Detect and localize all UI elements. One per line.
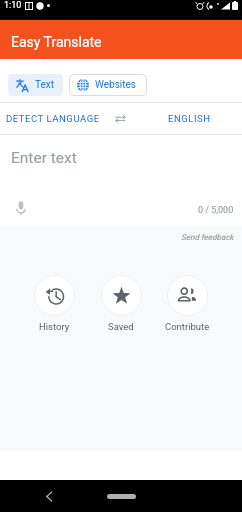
button[interactable]: ENGLISH (136, 103, 242, 134)
button[interactable]: Saved (88, 275, 154, 332)
staticText: Saved (108, 321, 134, 332)
staticText: Contribute (165, 321, 210, 332)
staticText: Websites (95, 79, 136, 91)
staticText: Text (35, 79, 55, 91)
button[interactable]: History (21, 275, 87, 332)
button[interactable]: Swap languages (105, 103, 136, 134)
button[interactable]: Contribute (154, 275, 220, 332)
staticText: DETECT LANGUAGE (6, 113, 100, 124)
staticText: 1:10 (4, 0, 22, 11)
staticText: Easy Translate (11, 34, 102, 50)
button[interactable]: Back (42, 489, 56, 503)
button[interactable]: Home (107, 494, 136, 499)
staticText: 0 / 5,000 (198, 205, 234, 216)
staticText: " (217, 2, 220, 10)
staticText: ENGLISH (168, 113, 211, 124)
button[interactable]: DETECT LANGUAGE (0, 103, 105, 134)
button[interactable]: Send feedback (181, 233, 234, 242)
button[interactable]: Voice input (14, 200, 28, 216)
staticText: Enter text (11, 149, 77, 167)
button[interactable]: Websites (69, 74, 147, 96)
button[interactable]: Text (8, 74, 63, 96)
staticText: History (39, 321, 70, 332)
